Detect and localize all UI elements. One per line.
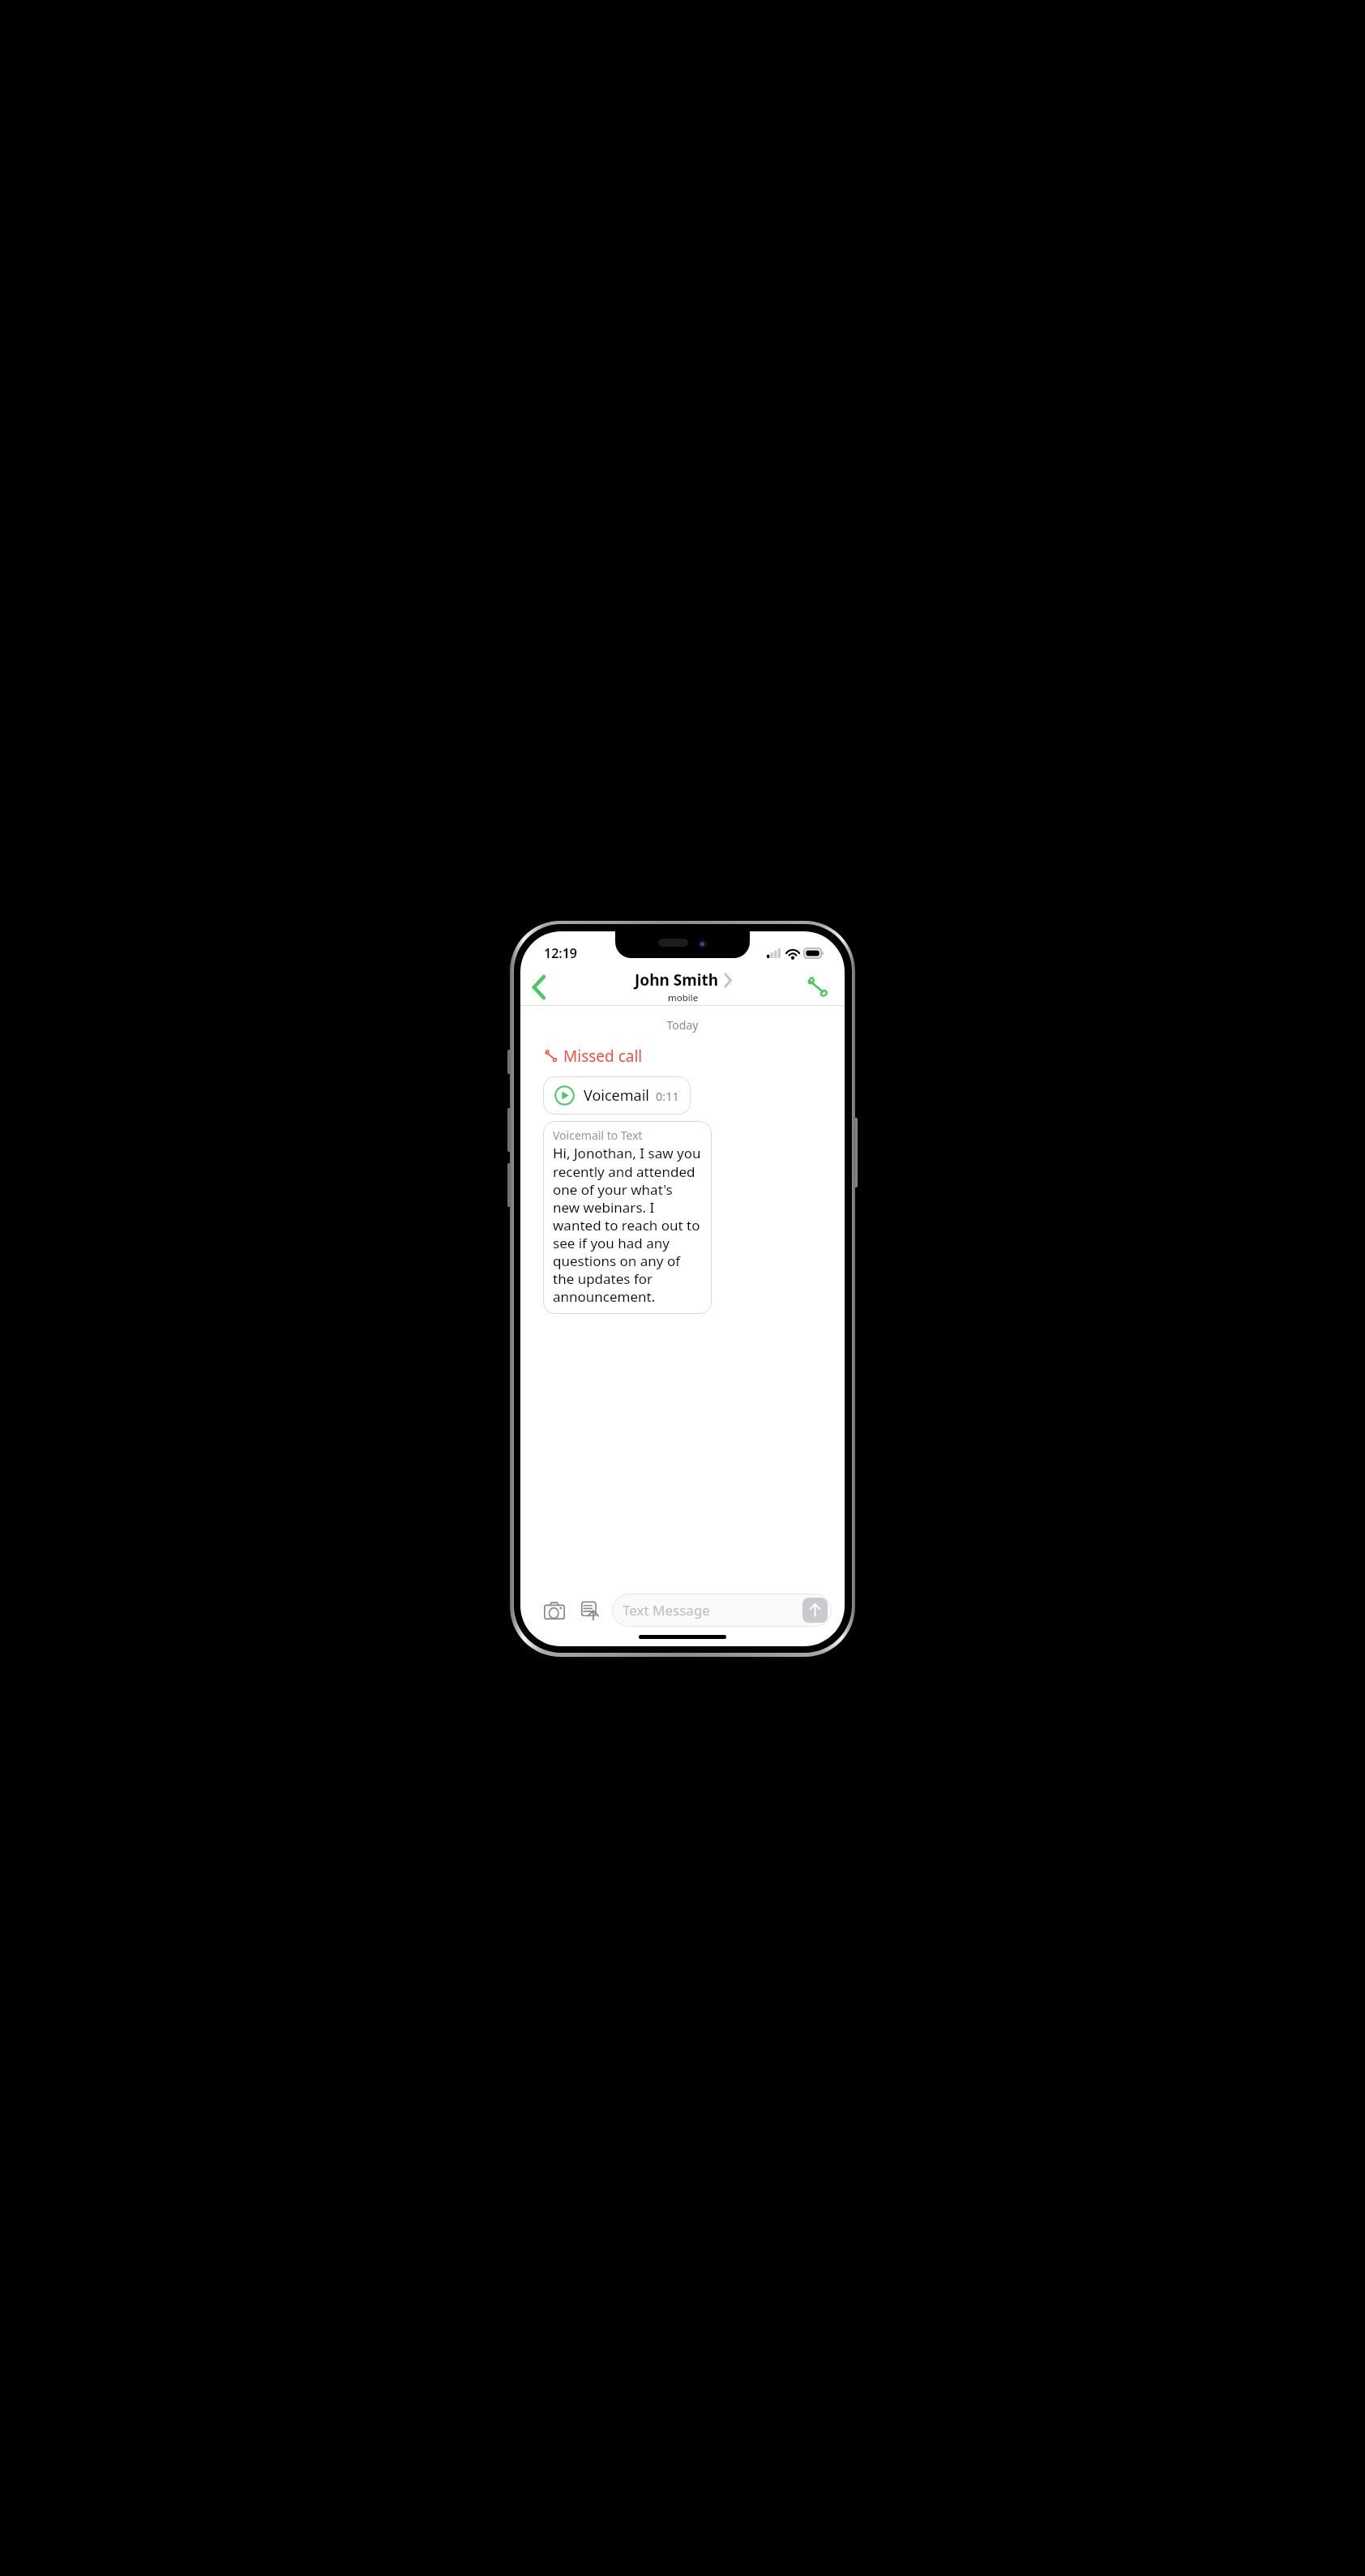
button[interactable]: Voicemail to Text: [543, 1121, 712, 1314]
button[interactable]: Missed call: [545, 1046, 643, 1067]
button[interactable]: Send: [802, 1598, 828, 1623]
staticText: John Smith: [635, 969, 719, 991]
button[interactable]: Call: [799, 969, 837, 1005]
button[interactable]: Voicemail: [543, 1076, 691, 1115]
staticText: 12:19: [544, 944, 578, 962]
staticText: Today: [520, 1017, 845, 1033]
staticText: Hi, Jonothan, I saw you recently and att…: [553, 1144, 703, 1306]
staticText: Voicemail: [584, 1085, 649, 1106]
button[interactable]: Share document: [574, 1594, 606, 1627]
staticText: mobile: [668, 991, 699, 1004]
staticText: Voicemail to Text: [553, 1128, 643, 1143]
button[interactable]: Camera: [538, 1594, 571, 1627]
staticText: 0:11: [656, 1088, 679, 1104]
staticText: Missed call: [563, 1046, 643, 1067]
button[interactable]: John Smith: [635, 969, 731, 1004]
button[interactable]: Back: [520, 969, 558, 1005]
button[interactable]: Text Message: [612, 1594, 832, 1627]
staticText: Text Message: [623, 1601, 710, 1620]
